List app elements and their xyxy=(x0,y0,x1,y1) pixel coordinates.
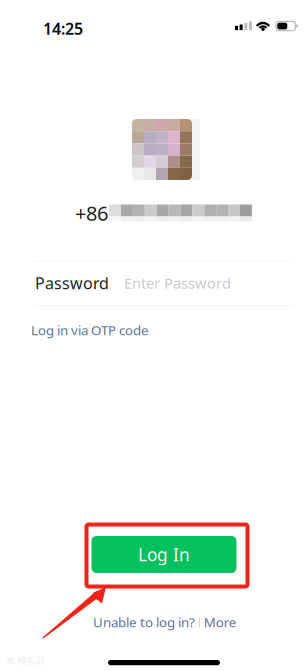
staticText: Log in via OTP code xyxy=(31,321,149,339)
button[interactable]: Unable to log in? xyxy=(93,613,195,631)
staticText: Unable to log in? xyxy=(93,613,195,631)
staticText: Password xyxy=(35,272,109,294)
staticText: Log In xyxy=(138,543,190,566)
button[interactable]: Log in via OTP code xyxy=(31,319,149,341)
staticText: More xyxy=(204,613,237,631)
staticText: Enter Password xyxy=(124,273,231,293)
button[interactable]: More xyxy=(204,613,237,631)
button[interactable]: Log In xyxy=(91,536,236,573)
staticText: ⌘ 模拟器 xyxy=(6,655,45,666)
staticText: +86 xyxy=(75,200,108,226)
staticText: 14:25 xyxy=(43,18,83,39)
